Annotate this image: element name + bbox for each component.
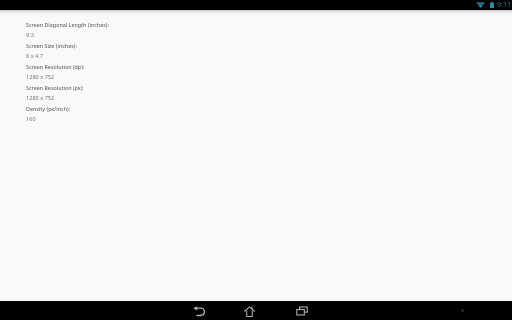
staticText: 8 x 4.7 [26,52,43,60]
staticText: 160 [26,115,36,123]
staticText: 1280 x 752 [26,73,55,81]
staticText: Screen Resolution (px): [26,84,84,91]
staticText: Screen Resolution (dp): [26,63,85,70]
staticText: 1280 x 752 [26,94,55,102]
staticText: Density (px/inch): [26,105,71,112]
staticText: 9.3 [26,31,34,39]
button[interactable]: Menu [455,301,469,320]
staticText: Screen Diagonal Length (inches): [26,21,109,28]
button[interactable]: Back [187,302,211,320]
staticText: 9:11 [497,0,511,10]
button[interactable]: Home [237,302,262,320]
staticText: Screen Size (inches): [26,42,77,49]
button[interactable]: Recents [289,302,314,320]
